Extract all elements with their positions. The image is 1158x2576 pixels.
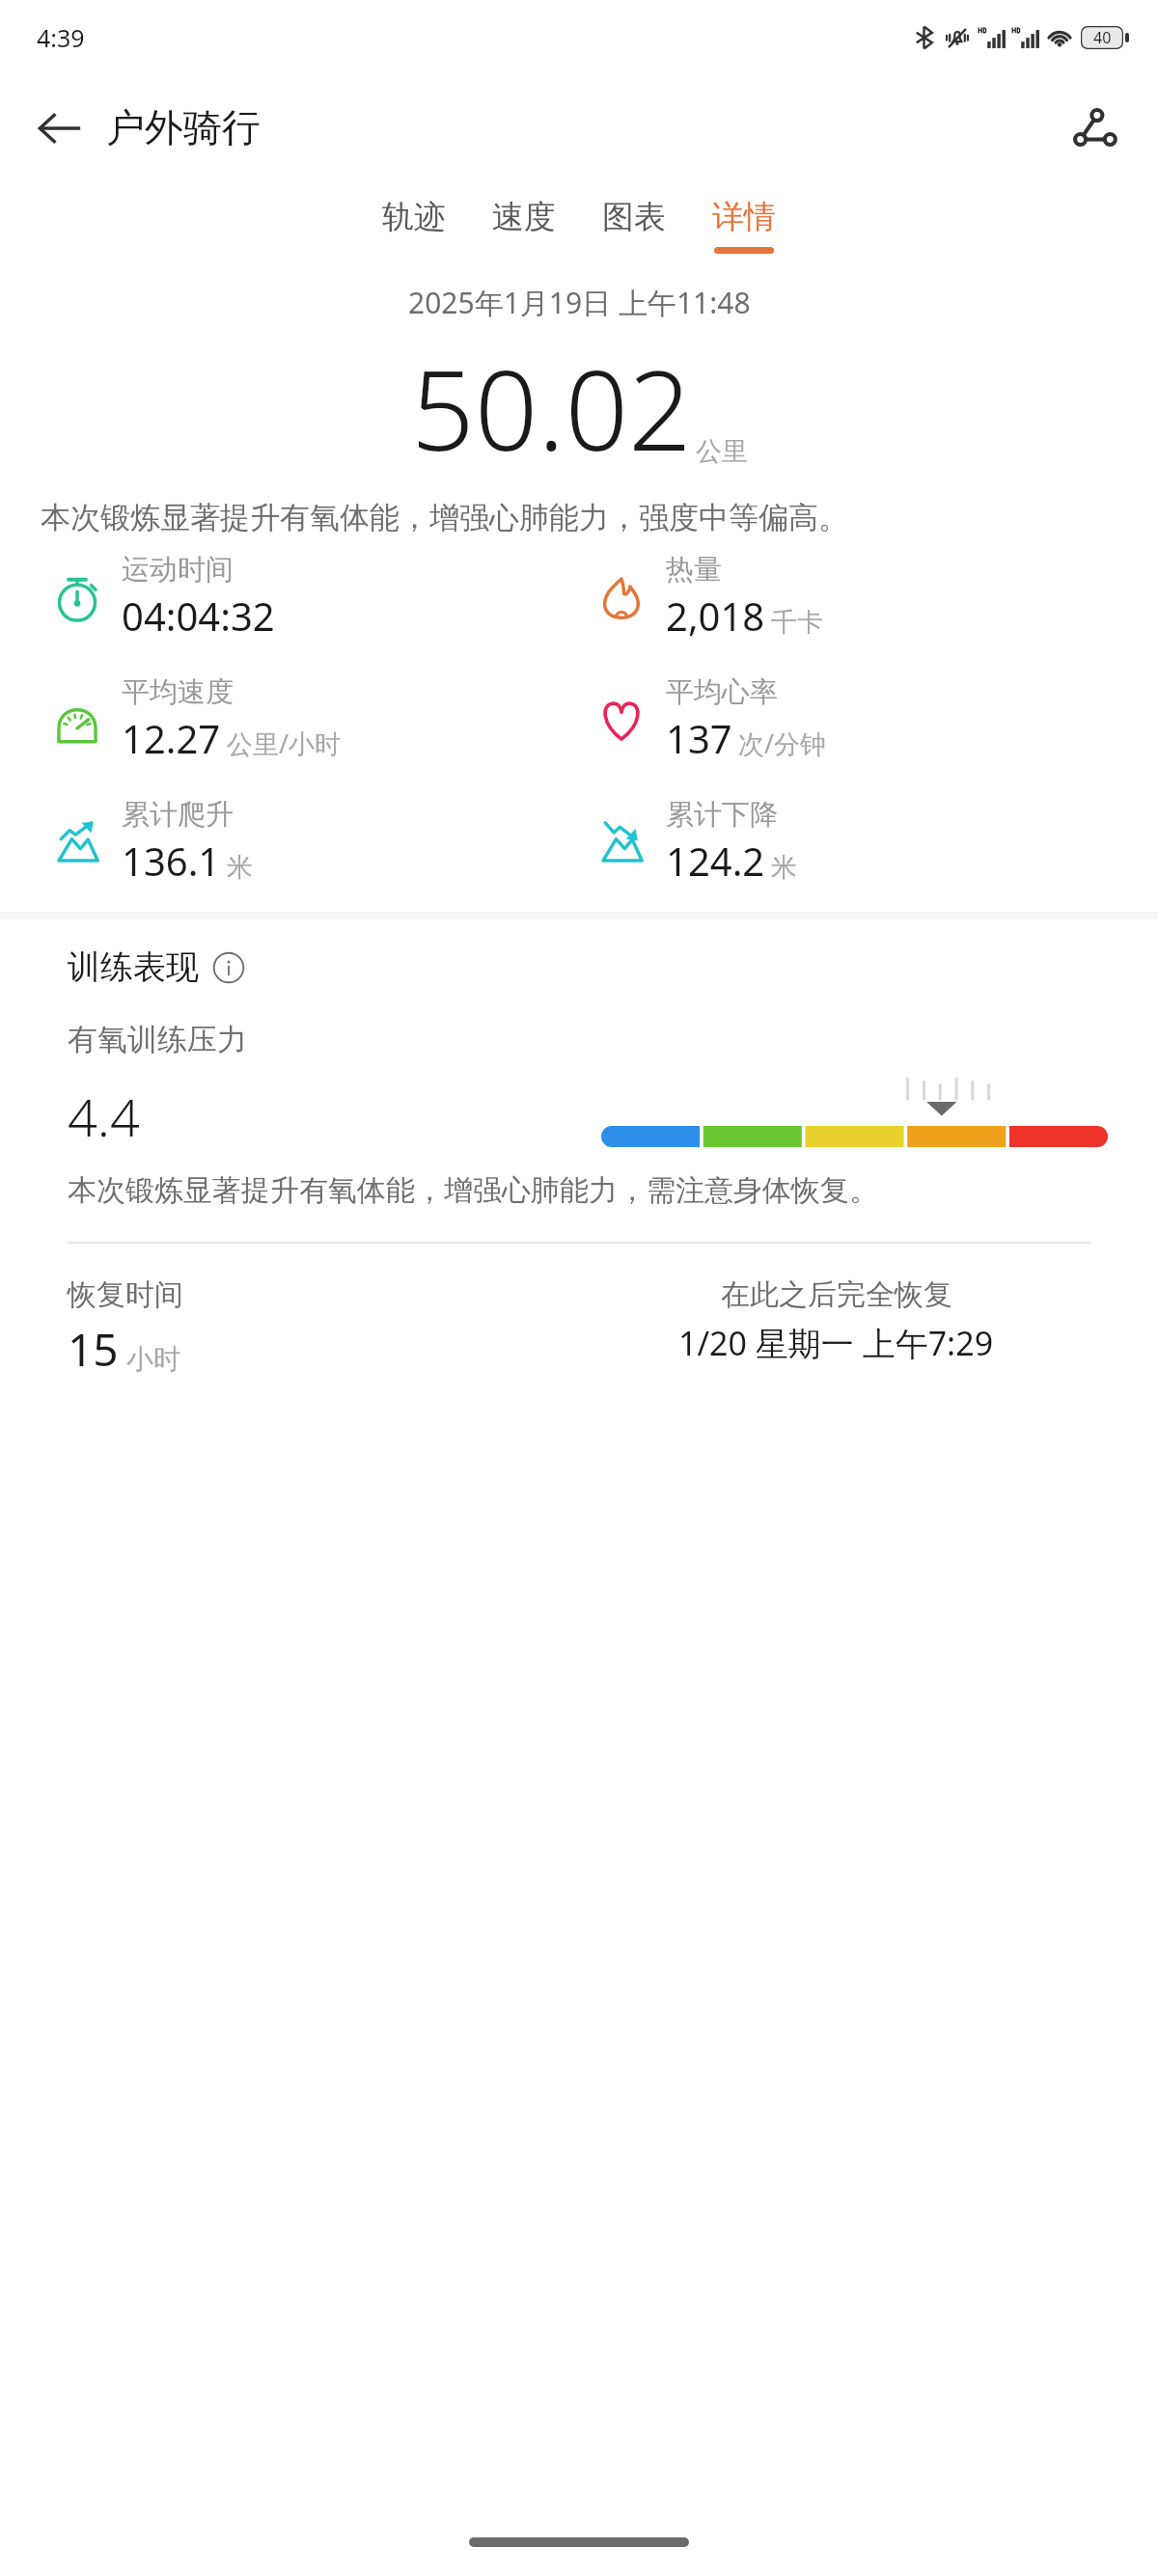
staticText: 平均心率 xyxy=(666,674,778,710)
staticText: 2025年1月19日 上午11:48 xyxy=(408,283,751,322)
staticText: 户外骑行 xyxy=(106,103,261,151)
button[interactable]: Share xyxy=(1054,88,1135,169)
button[interactable]: Back xyxy=(21,90,98,167)
staticText: 15 xyxy=(68,1319,119,1380)
staticText: 1/20 星期一 上午7:29 xyxy=(678,1321,994,1365)
staticText: 恢复时间 xyxy=(68,1276,183,1313)
button[interactable]: 热量 xyxy=(594,552,823,642)
staticText: 137 xyxy=(666,712,732,764)
staticText: 本次锻炼显著提升有氧体能，增强心肺能力，强度中等偏高。 xyxy=(41,499,1117,536)
staticText: 在此之后完全恢复 xyxy=(721,1276,952,1313)
staticText: 平均速度 xyxy=(122,674,234,710)
staticText: 速度 xyxy=(492,197,556,237)
staticText: 米 xyxy=(227,851,253,884)
staticText: 4.4 xyxy=(68,1081,140,1152)
staticText: 小时 xyxy=(126,1342,180,1376)
staticText: 训练表现 xyxy=(68,946,199,988)
staticText: 轨迹 xyxy=(382,197,446,237)
staticText: 热量 xyxy=(666,552,722,588)
staticText: 次/分钟 xyxy=(738,726,827,761)
staticText: 详情 xyxy=(712,197,776,237)
staticText: 有氧训练压力 xyxy=(68,1021,247,1058)
button[interactable]: 累计爬升 xyxy=(50,797,253,887)
button[interactable]: 速度 xyxy=(469,189,579,261)
staticText: 本次锻炼显著提升有氧体能，增强心肺能力，需注意身体恢复。 xyxy=(68,1172,878,1209)
button[interactable]: 图表 xyxy=(579,189,689,261)
button[interactable]: 训练表现 xyxy=(68,946,245,988)
staticText: 千卡 xyxy=(771,606,823,639)
button[interactable]: 运动时间 xyxy=(50,552,275,642)
staticText: 50.02 xyxy=(411,332,692,483)
staticText: 136.1 xyxy=(122,835,221,887)
staticText: 12.27 xyxy=(122,712,221,764)
button[interactable]: 详情 xyxy=(689,189,799,261)
staticText: 公里 xyxy=(696,435,748,468)
staticText: 124.2 xyxy=(666,835,765,887)
staticText: 米 xyxy=(771,851,797,884)
other: Info xyxy=(212,951,245,984)
staticText: 40 xyxy=(1093,27,1112,48)
staticText: 2,018 xyxy=(666,589,765,642)
button[interactable]: 轨迹 xyxy=(359,189,469,261)
staticText: 图表 xyxy=(602,197,666,237)
staticText: 累计爬升 xyxy=(122,797,234,833)
staticText: 04:04:32 xyxy=(122,589,275,642)
button[interactable]: 累计下降 xyxy=(594,797,797,887)
staticText: 公里/小时 xyxy=(227,726,342,761)
button[interactable]: 平均速度 xyxy=(50,674,342,764)
staticText: 4:39 xyxy=(37,21,85,54)
staticText: 运动时间 xyxy=(122,552,234,588)
button[interactable]: 平均心率 xyxy=(594,674,827,764)
staticText: 累计下降 xyxy=(666,797,778,833)
